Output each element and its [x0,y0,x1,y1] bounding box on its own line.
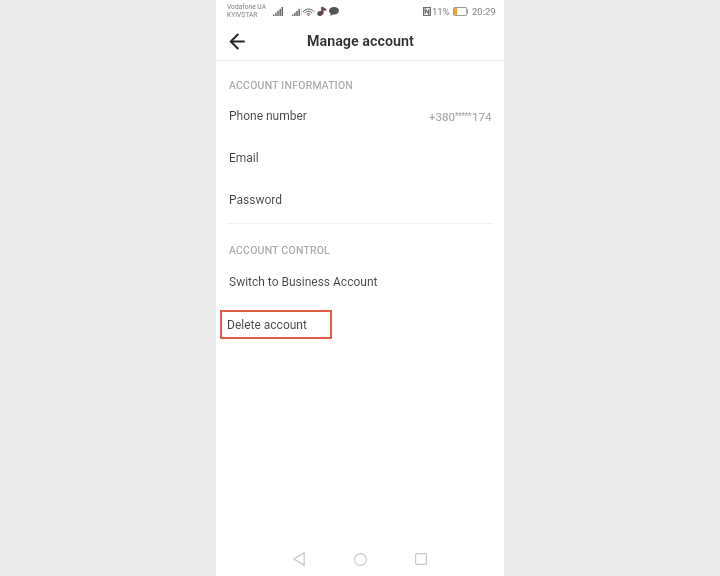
button[interactable]: Back [224,28,250,54]
staticText: 20:29 [472,6,496,17]
staticText: 11% [432,6,450,17]
button[interactable]: Email [216,137,504,179]
button[interactable]: Delete account [220,310,332,339]
button[interactable]: Back [286,546,312,572]
button[interactable]: Switch to Business Account [216,261,504,303]
button[interactable]: Home [347,546,373,572]
staticText: 174 [472,110,492,123]
staticText: Manage account [307,33,414,50]
staticText: Vodafone UA [227,3,266,11]
staticText: Phone number [229,109,307,123]
staticText: ACCOUNT INFORMATION [229,79,354,91]
staticText: Email [229,151,259,165]
staticText: KYIVSTAR [227,11,258,19]
staticText: Switch to Business Account [229,275,378,289]
staticText: Password [229,193,283,207]
staticText: ***** [455,111,472,121]
staticText: Delete account [227,318,307,332]
button[interactable]: Recents [408,546,434,572]
button[interactable]: Phone number [216,95,504,137]
staticText: ACCOUNT CONTROL [229,244,330,256]
button[interactable]: Password [216,179,504,221]
staticText: +380 [429,110,455,123]
